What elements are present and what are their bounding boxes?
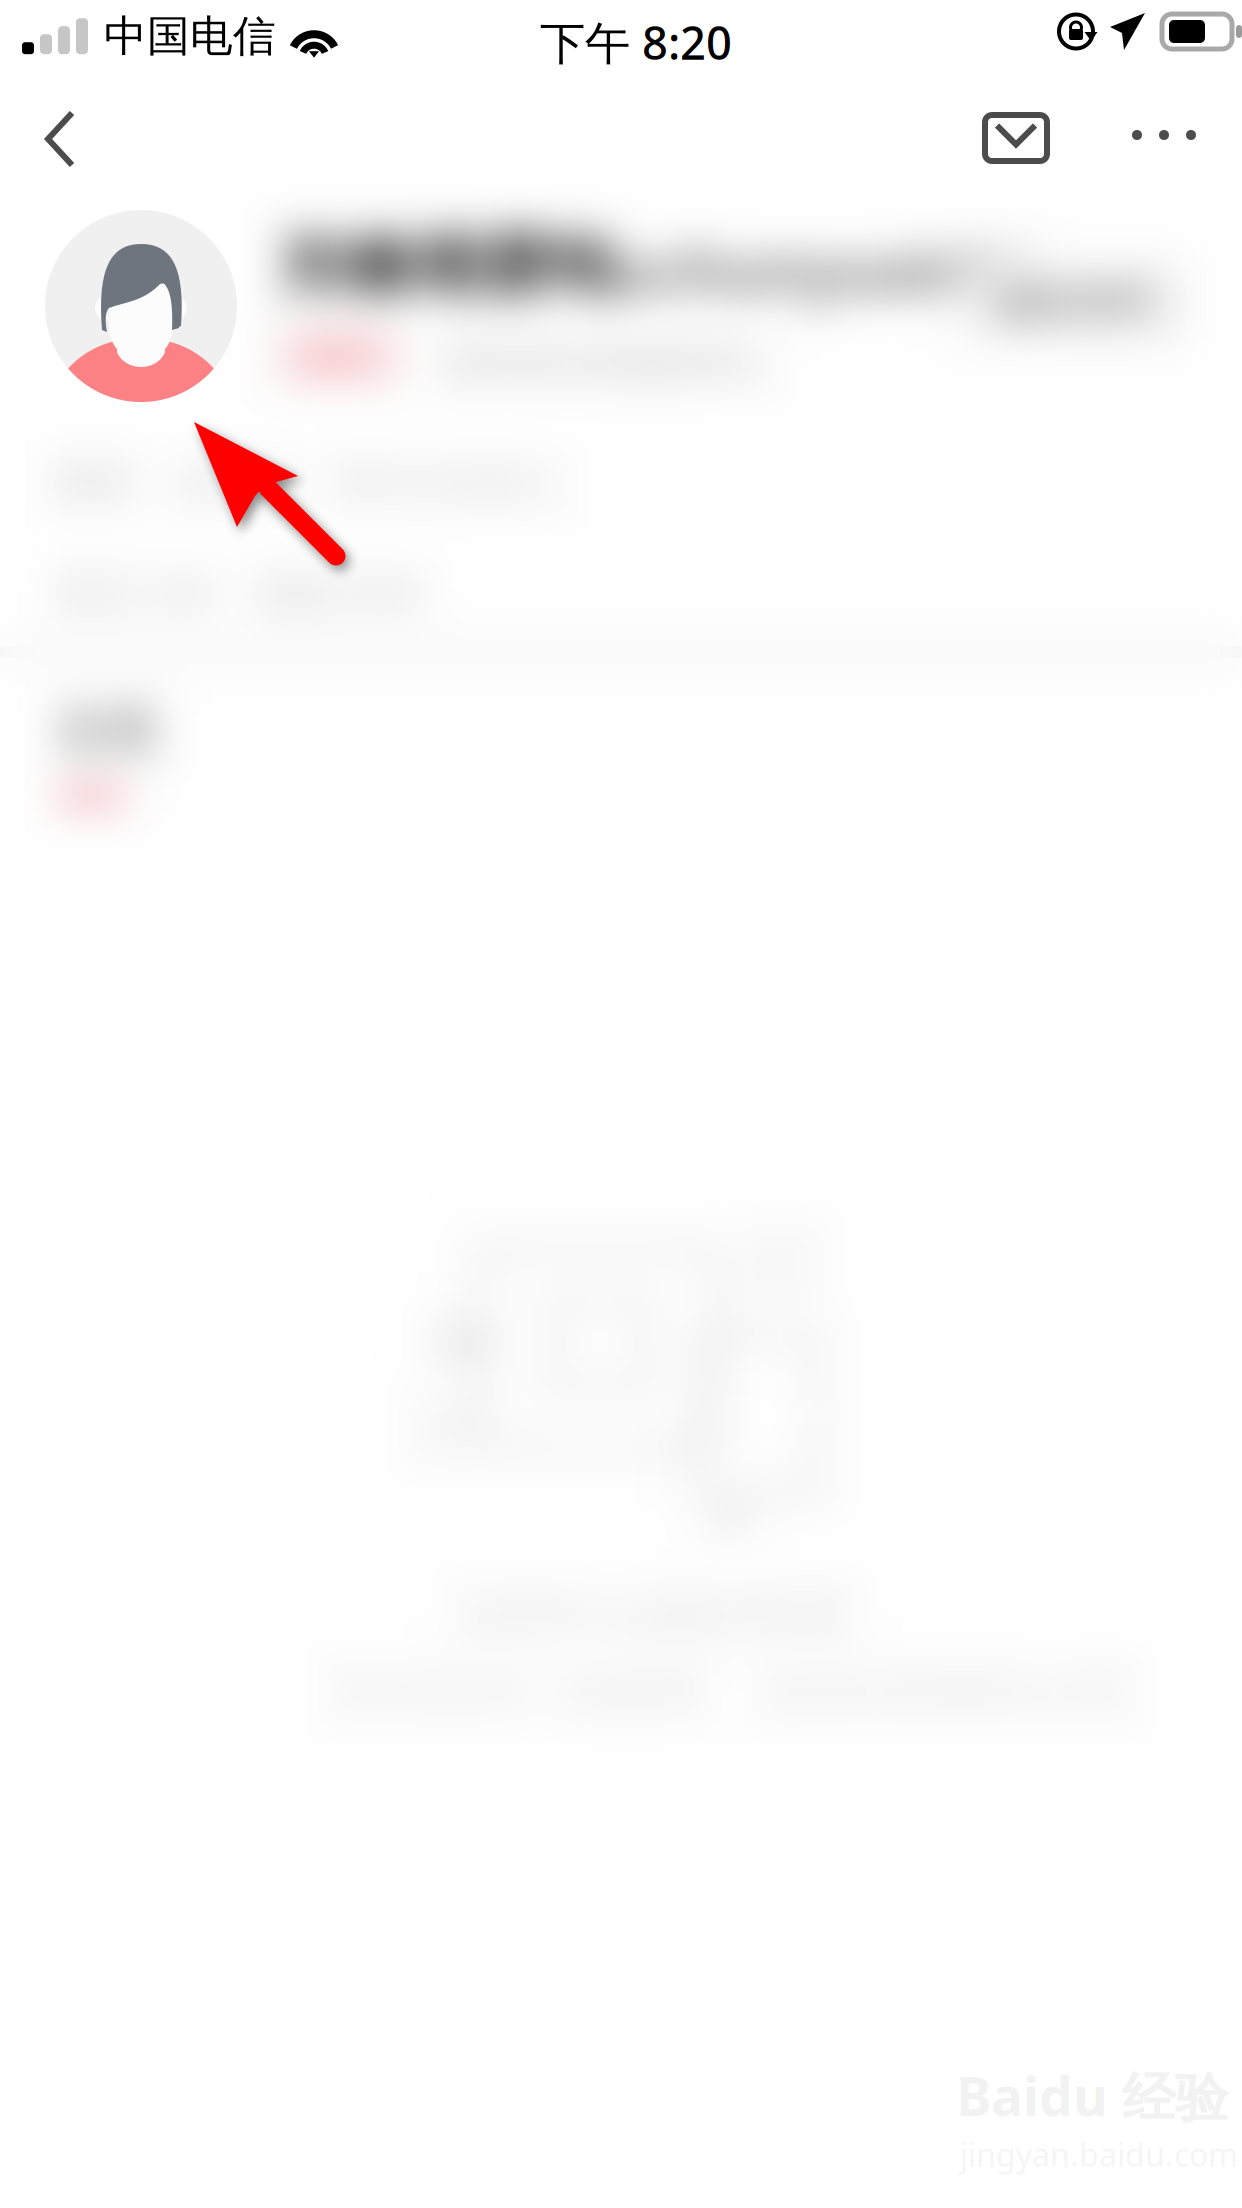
staticText: 中国电信 — [104, 10, 276, 62]
staticText: 3月5日 — [176, 458, 292, 508]
staticText: 刘春雨爱吃 — [283, 226, 618, 308]
staticText: 粉丝 34 — [262, 568, 388, 618]
staticText: Baidu 经验 — [956, 2060, 1228, 2131]
staticText: jingyan.baidu.com — [960, 2133, 1238, 2176]
button[interactable]: Back — [0, 66, 126, 184]
staticText: 超话 — [302, 333, 376, 379]
staticText: 下午 8:20 — [540, 12, 732, 72]
staticText: liuchunyuaichi — [578, 228, 1026, 309]
staticText: 主页 — [56, 700, 158, 762]
button[interactable]: Messages — [957, 66, 1075, 184]
button[interactable]: More — [1092, 66, 1242, 184]
staticText: 编辑资料 — [992, 277, 1156, 327]
